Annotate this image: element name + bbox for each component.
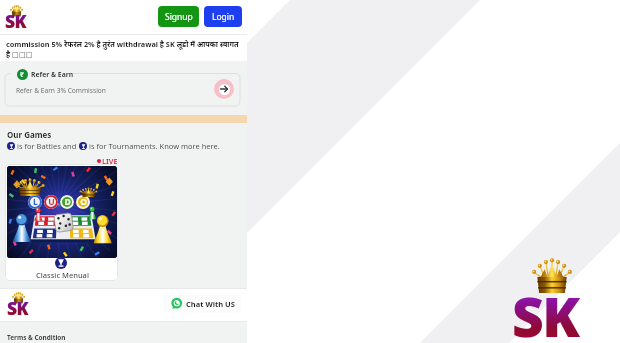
button[interactable]: L <box>5 164 118 281</box>
staticText: SK <box>512 278 579 343</box>
staticText: ₹ <box>20 70 25 80</box>
button[interactable]: Open Refer and Earn <box>214 79 234 99</box>
staticText: Classic Menual <box>36 270 89 280</box>
staticText: LIVE <box>102 156 118 166</box>
staticText: D <box>64 196 71 208</box>
staticText: Login <box>212 11 235 23</box>
staticText: SK <box>7 296 29 320</box>
staticText: is for Tournaments. Know more here. <box>87 141 220 151</box>
staticText: commission 5% रेफरल 2% है तुरंत withdraw… <box>6 39 239 49</box>
staticText: Refer & Earn <box>31 70 74 79</box>
staticText: L <box>33 196 38 208</box>
staticText: Signup <box>165 11 193 23</box>
staticText: U <box>48 196 55 208</box>
button[interactable]: Chat With US <box>164 294 241 313</box>
staticText: Terms & Condition <box>7 333 66 342</box>
staticText: O <box>80 196 87 208</box>
staticText: SK <box>5 9 27 33</box>
staticText: Our Games <box>7 129 52 140</box>
button[interactable]: Signup <box>158 6 199 27</box>
staticText: is for Battles and <box>15 141 79 151</box>
staticText: Chat With US <box>186 299 235 309</box>
staticText: है □□□ <box>6 49 33 59</box>
staticText: Refer & Earn 3% Commission <box>16 86 106 95</box>
button[interactable]: Login <box>204 6 242 27</box>
